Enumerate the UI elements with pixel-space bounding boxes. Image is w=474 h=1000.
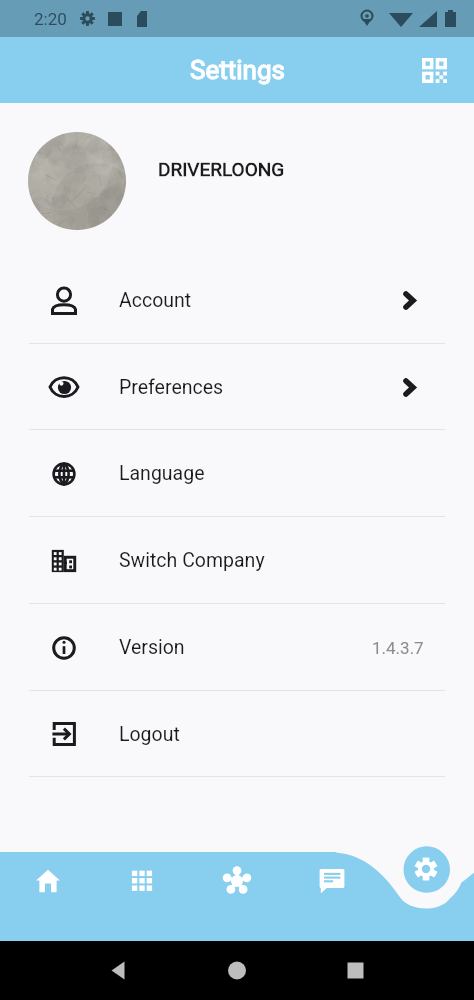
staticText: DRIVERLOONG [158,158,285,180]
staticText: Preferences [119,376,224,399]
button[interactable]: Hub [207,852,267,910]
button[interactable]: Version [0,604,474,691]
button[interactable]: Account [0,256,474,344]
button[interactable]: Messages [302,852,362,910]
button[interactable]: Logout [0,691,474,777]
staticText: Account [119,289,192,312]
button[interactable]: Settings [402,845,450,893]
staticText: 1.4.3.7 [372,638,424,658]
staticText: 2:20 [34,9,67,29]
button[interactable]: Language [0,430,474,517]
staticText: Settings [190,55,285,85]
staticText: Switch Company [119,549,265,572]
button[interactable]: Home [18,852,78,910]
staticText: Language [119,462,205,485]
button[interactable]: Preferences [0,344,474,430]
button[interactable]: Scan QR code [416,52,452,88]
button[interactable]: Apps [112,852,172,910]
staticText: Version [119,636,185,659]
button[interactable]: Switch Company [0,517,474,604]
staticText: Logout [119,723,180,746]
